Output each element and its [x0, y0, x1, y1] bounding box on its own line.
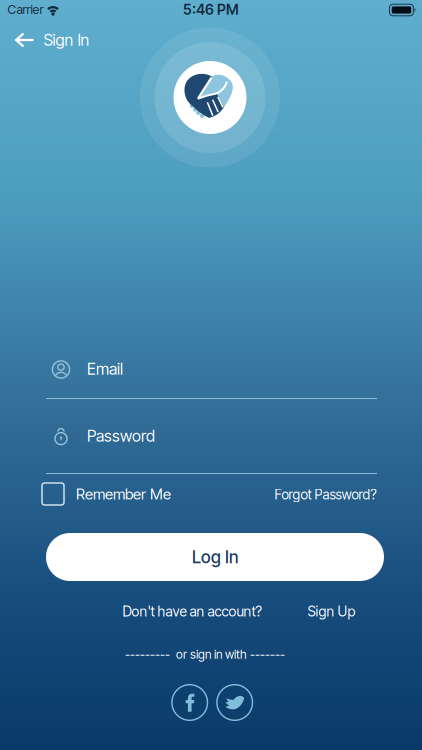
staticText: Email: [87, 359, 123, 379]
staticText: Don't have an account?: [122, 603, 261, 620]
button[interactable]: Log In: [46, 533, 384, 581]
staticText: --------- or sign in with -------: [125, 647, 285, 662]
staticText: Remember Me: [76, 485, 171, 503]
staticText: Forgot Password?: [274, 486, 376, 503]
button[interactable]: Password: [46, 415, 377, 474]
button[interactable]: Remember Me: [42, 483, 171, 505]
staticText: Sign Up: [307, 603, 355, 620]
button[interactable]: Sign in with Facebook: [172, 685, 207, 720]
staticText: Carrier: [7, 2, 43, 17]
button[interactable]: Sign In: [14, 30, 89, 50]
button[interactable]: Email: [46, 348, 377, 400]
button[interactable]: Forgot Password?: [176, 486, 376, 503]
button[interactable]: Sign Up: [307, 603, 355, 620]
staticText: 5:46 PM: [183, 1, 239, 18]
staticText: Log In: [192, 547, 238, 567]
button[interactable]: Sign in with Twitter: [217, 685, 252, 720]
staticText: Password: [87, 426, 155, 446]
staticText: Sign In: [43, 30, 89, 50]
